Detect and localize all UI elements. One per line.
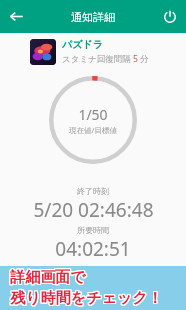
staticText: 詳細画面で: [9, 268, 85, 287]
staticText: 詳細画面で: [11, 267, 87, 286]
staticText: 残り時間をチェック！: [11, 290, 164, 309]
staticText: 04:02:51: [55, 236, 131, 262]
staticText: パズドラ: [62, 38, 103, 51]
staticText: 通知解除: [77, 278, 109, 288]
staticText: 詳細画面で: [10, 269, 86, 288]
staticText: 残り時間をチェック！: [9, 288, 162, 307]
staticText: 残り時間をチェック！: [11, 289, 164, 308]
staticText: 所要時間: [77, 225, 109, 235]
button[interactable]: 通知解除: [0, 278, 186, 288]
staticText: 残り時間をチェック！: [11, 288, 164, 307]
staticText: 残り時間をチェック！: [10, 290, 163, 309]
staticText: 詳細画面で: [9, 269, 85, 288]
staticText: 詳細画面で: [9, 267, 85, 286]
staticText: 現在値/目標値: [69, 125, 117, 135]
staticText: 残り時間をチェック！: [9, 290, 162, 309]
staticText: 1/50: [78, 105, 108, 124]
staticText: 詳細画面で: [11, 269, 87, 288]
staticText: 詳細画面で: [11, 268, 87, 287]
staticText: 残り時間をチェック！: [10, 288, 163, 307]
button[interactable]: パズドラ: [30, 38, 186, 65]
button[interactable]: Power: [153, 0, 186, 33]
button[interactable]: Back: [0, 0, 33, 33]
staticText: 残り時間をチェック！: [10, 289, 163, 308]
staticText: 5/20 02:46:48: [33, 197, 154, 223]
staticText: 詳細画面で: [10, 268, 86, 287]
staticText: 残り時間をチェック！: [9, 289, 162, 308]
staticText: 終了時刻: [77, 186, 109, 196]
staticText: 詳細画面で: [10, 267, 86, 286]
staticText: 通知詳細: [71, 10, 115, 24]
staticText: スタミナ回復間隔 5 分: [62, 53, 149, 65]
